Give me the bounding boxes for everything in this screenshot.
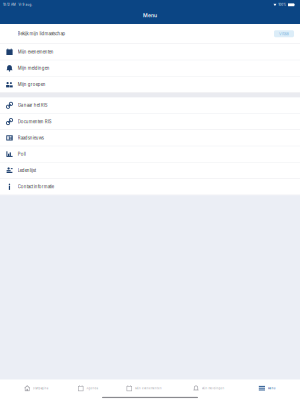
button[interactable]: Menu [259,380,276,396]
staticText: Documenten RIS [18,119,52,124]
button[interactable]: Documenten RIS [0,114,300,130]
button[interactable]: Mijn evenementen [126,380,162,396]
staticText: Mijn groepen [18,82,46,87]
button[interactable]: Contact informatie [0,179,300,195]
button[interactable]: Mijn evenementen [0,44,300,60]
staticText: Vitaal [279,31,289,36]
button[interactable]: Agenda [78,380,97,396]
staticText: Mijn meldingen [18,66,50,71]
staticText: Mijn meldingen [202,387,225,390]
button[interactable]: Bekijk mijn lidmaatschap [0,24,300,44]
staticText: Mijn evenementen [18,49,54,54]
staticText: Agenda [86,387,97,390]
staticText: Menu [268,387,276,390]
button[interactable]: Ledenlijst [0,163,300,179]
staticText: Contact informatie [18,184,54,189]
button[interactable]: Poll [0,146,300,163]
staticText: Bekijk mijn lidmaatschap [17,31,65,36]
staticText: Menu [143,12,157,18]
button[interactable]: Mijn meldingen [193,380,225,396]
staticText: Vr 9 aug. [19,3,33,6]
staticText: Ledenlijst [18,168,36,173]
staticText: Ga naar het RIS [18,103,48,108]
button[interactable]: Mijn groepen [0,77,300,93]
button[interactable]: Ga naar het RIS [0,97,300,114]
staticText: 100% [278,3,286,6]
staticText: 10:12 AM [3,3,16,6]
button[interactable]: Raadsnieuws [0,130,300,146]
staticText: Startpagina [33,387,48,390]
button[interactable]: Mijn meldingen [0,60,300,77]
staticText: Raadsnieuws [18,135,44,140]
staticText: Poll [18,152,26,157]
button[interactable]: Startpagina [24,380,48,396]
staticText: Mijn evenementen [135,387,162,390]
